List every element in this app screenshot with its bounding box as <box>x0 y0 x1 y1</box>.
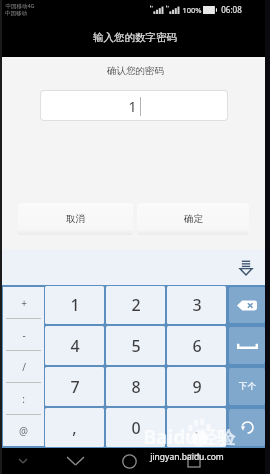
button[interactable]: 8 <box>106 367 165 406</box>
button[interactable]: : <box>3 383 44 414</box>
button[interactable]: 6 <box>167 326 226 365</box>
button[interactable]: 5 <box>106 326 165 365</box>
staticText: 下个 <box>239 381 256 392</box>
button[interactable]: + <box>3 287 44 318</box>
button[interactable]: / <box>3 351 44 382</box>
button[interactable]: 4 <box>45 326 104 365</box>
button[interactable]: 7 <box>45 367 104 406</box>
button[interactable]: Hide keyboard <box>238 259 254 275</box>
button[interactable]: Backspace <box>229 287 265 323</box>
button[interactable]: - <box>3 319 44 350</box>
button[interactable]: 3 <box>167 286 226 324</box>
staticText: Baidu <box>143 424 198 450</box>
button[interactable]: Next <box>229 368 265 405</box>
staticText: 7 <box>70 376 80 398</box>
button[interactable]: Home <box>113 448 145 474</box>
button[interactable]: 9 <box>167 367 226 406</box>
staticText: 8 <box>131 376 141 398</box>
staticText: 100% <box>182 5 202 15</box>
button[interactable]: 确定 <box>137 203 249 235</box>
staticText: 3 <box>192 294 202 316</box>
staticText: 确认您的密码 <box>107 65 164 77</box>
staticText: . <box>194 417 199 439</box>
staticText: - <box>22 328 26 342</box>
button[interactable]: @ <box>3 415 44 446</box>
staticText: 1 <box>70 294 80 316</box>
staticText: 中国移动 <box>5 10 27 17</box>
button[interactable]: Back <box>59 448 91 474</box>
button[interactable]: 取消 <box>18 203 133 235</box>
staticText: 1 <box>128 96 137 116</box>
button[interactable]: , <box>45 408 104 447</box>
staticText: jingyan.baidu.com <box>150 451 224 463</box>
button[interactable]: 1 <box>41 91 227 120</box>
staticText: : <box>22 392 25 406</box>
staticText: , <box>72 417 77 439</box>
button[interactable]: 2 <box>106 286 165 324</box>
button[interactable]: Menu <box>11 448 35 474</box>
staticText: 9 <box>192 376 202 398</box>
staticText: 5 <box>131 335 141 357</box>
staticText: 输入您的数字密码 <box>93 31 177 44</box>
staticText: / <box>22 360 26 374</box>
button[interactable]: Recents <box>180 448 208 474</box>
button[interactable]: 1 <box>45 286 104 324</box>
staticText: 取消 <box>66 213 85 225</box>
button[interactable]: 0 <box>106 408 165 447</box>
button[interactable]: Space <box>229 327 265 364</box>
staticText: 06:08 <box>221 4 242 15</box>
staticText: + <box>21 296 27 310</box>
staticText: 0 <box>131 417 141 439</box>
staticText: 6 <box>192 335 202 357</box>
staticText: 2 <box>131 294 141 316</box>
button[interactable]: Enter <box>229 409 265 446</box>
staticText: 确定 <box>184 213 203 225</box>
staticText: 4 <box>70 335 80 357</box>
button[interactable]: . <box>167 408 226 447</box>
staticText: @ <box>19 424 28 438</box>
staticText: 经验 <box>199 427 235 450</box>
staticText: 中国移动4G <box>5 2 35 10</box>
